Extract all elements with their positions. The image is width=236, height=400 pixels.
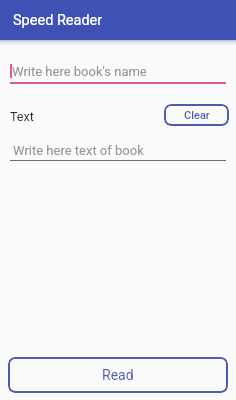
button[interactable]: Read — [8, 357, 228, 393]
staticText: Write here text of book — [13, 143, 144, 158]
staticText: Clear — [184, 109, 210, 122]
staticText: Text — [10, 109, 34, 124]
staticText: Read — [102, 367, 134, 383]
staticText: Write here book's name — [12, 64, 147, 79]
button[interactable]: Clear — [164, 104, 229, 126]
staticText: Speed Reader — [13, 12, 103, 29]
